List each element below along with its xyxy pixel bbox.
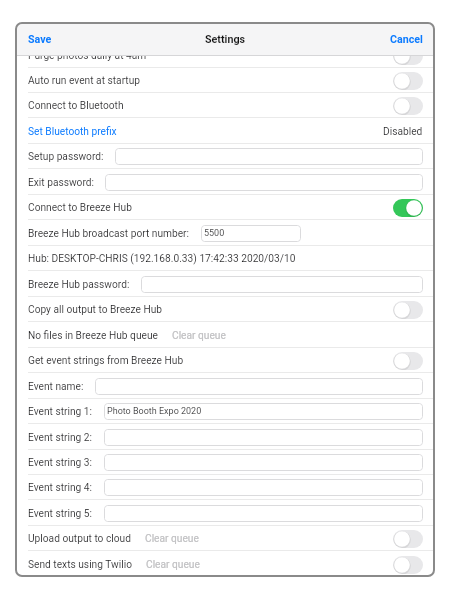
button[interactable]: Auto run event at startup	[28, 68, 140, 93]
staticText: Hub: DESKTOP-CHRIS (192.168.0.33) 17:42:…	[28, 253, 296, 265]
button[interactable]: Clear queue	[146, 552, 200, 577]
button[interactable]: Upload output to cloud toggle	[393, 530, 423, 548]
button[interactable]: Purge photos daily at 4am toggle	[393, 47, 423, 65]
staticText: Set Bluetooth prefix	[28, 126, 117, 138]
staticText: Copy all output to Breeze Hub	[28, 304, 163, 316]
staticText: Event string 3:	[28, 457, 93, 469]
button[interactable]: Copy all output to Breeze Hub toggle	[393, 301, 423, 319]
staticText: Upload output to cloud	[28, 533, 131, 545]
button[interactable]: Set Bluetooth prefix	[28, 119, 117, 144]
staticText: Get event strings from Breeze Hub	[28, 355, 184, 367]
button[interactable]: Copy all output to Breeze Hub	[28, 297, 163, 322]
staticText: No files in Breeze Hub queue	[28, 330, 158, 342]
staticText: Settings	[205, 33, 245, 46]
button[interactable]: Clear queue	[145, 526, 199, 551]
button[interactable]: Cancel	[380, 22, 435, 56]
button[interactable]: Get event strings from Breeze Hub toggle	[393, 352, 423, 370]
staticText: Exit password:	[28, 177, 94, 189]
staticText: Save	[28, 33, 52, 46]
button[interactable]: Save	[15, 22, 62, 56]
button[interactable]: Connect to Breeze Hub toggle	[393, 199, 423, 217]
staticText: Event string 2:	[28, 432, 93, 444]
button[interactable]: 5500	[201, 225, 301, 242]
staticText: Event name:	[28, 381, 84, 393]
staticText: Send texts using Twilio	[28, 559, 132, 571]
button[interactable]: Get event strings from Breeze Hub	[28, 348, 184, 373]
button[interactable]	[115, 148, 423, 165]
staticText: Event string 4:	[28, 482, 93, 494]
button[interactable]: Auto run event at startup toggle	[393, 72, 423, 90]
staticText: Event string 1:	[28, 406, 93, 418]
staticText: Connect to Bluetooth	[28, 100, 124, 112]
staticText: Breeze Hub password:	[28, 279, 130, 291]
button[interactable]	[104, 479, 423, 496]
staticText: 5500	[204, 228, 225, 239]
staticText: Cancel	[390, 33, 423, 46]
button[interactable]	[141, 276, 423, 293]
button[interactable]: Send texts using Twilio toggle	[393, 556, 423, 574]
button[interactable]	[104, 505, 423, 522]
staticText: Event string 5:	[28, 508, 93, 520]
button[interactable]	[105, 174, 423, 191]
button[interactable]: Connect to Breeze Hub	[28, 195, 132, 220]
staticText: Setup password:	[28, 151, 104, 163]
button[interactable]	[95, 378, 423, 395]
button[interactable]: Photo Booth Expo 2020	[104, 403, 423, 420]
button[interactable]: Clear queue	[172, 323, 226, 348]
staticText: Photo Booth Expo 2020	[107, 406, 202, 417]
staticText: Clear queue	[146, 559, 200, 571]
staticText: Clear queue	[145, 533, 199, 545]
staticText: Purge photos daily at 4am	[28, 50, 147, 62]
button[interactable]: Connect to Bluetooth toggle	[393, 97, 423, 115]
staticText: Disabled	[383, 126, 423, 138]
staticText: Breeze Hub broadcast port number:	[28, 228, 190, 240]
button[interactable]: Purge photos daily at 4am	[28, 43, 147, 68]
button[interactable]	[104, 454, 423, 471]
staticText: Clear queue	[172, 330, 226, 342]
button[interactable]	[104, 429, 423, 446]
button[interactable]: Connect to Bluetooth	[28, 93, 124, 118]
staticText: Connect to Breeze Hub	[28, 202, 132, 214]
staticText: Auto run event at startup	[28, 75, 140, 87]
